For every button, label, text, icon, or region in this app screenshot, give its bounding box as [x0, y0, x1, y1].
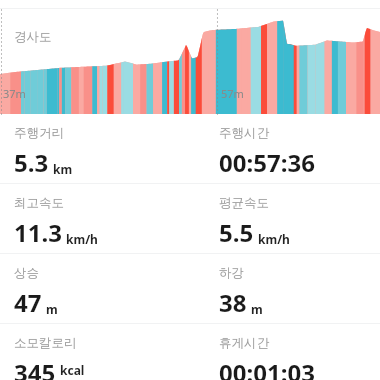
staticText: 11.3	[14, 216, 62, 249]
staticText: 상승	[14, 265, 39, 281]
button[interactable]: 주행거리	[0, 114, 205, 183]
staticText: 38	[219, 286, 247, 319]
staticText: 5.5	[219, 216, 254, 249]
staticText: 345	[14, 356, 56, 380]
staticText: 5.3	[14, 146, 49, 179]
button[interactable]: 평균속도	[205, 184, 380, 253]
staticText: 경사도	[14, 29, 52, 45]
staticText: 47	[14, 286, 42, 319]
staticText: km/h	[66, 231, 98, 247]
button[interactable]: 주행시간	[205, 114, 380, 183]
button[interactable]: 소모칼로리	[0, 324, 205, 380]
staticText: 37m	[3, 86, 26, 101]
staticText: km	[53, 161, 73, 177]
staticText: m	[251, 301, 263, 317]
button[interactable]: 하강	[205, 254, 380, 323]
staticText: 주행거리	[14, 125, 64, 141]
button[interactable]: 최고속도	[0, 184, 205, 253]
button[interactable]: 상승	[0, 254, 205, 323]
button[interactable]: 휴게시간	[205, 324, 380, 380]
staticText: 00:57:36	[219, 146, 315, 179]
staticText: m	[46, 301, 58, 317]
staticText: 주행시간	[219, 125, 269, 141]
staticText: 평균속도	[219, 195, 269, 211]
staticText: km/h	[258, 231, 290, 247]
staticText: 최고속도	[14, 195, 64, 211]
staticText: 하강	[219, 265, 244, 281]
staticText: 소모칼로리	[14, 335, 77, 351]
staticText: 57m	[221, 86, 244, 101]
staticText: kcal	[60, 362, 85, 378]
staticText: 00:01:03	[219, 356, 315, 380]
staticText: 휴게시간	[219, 335, 269, 351]
